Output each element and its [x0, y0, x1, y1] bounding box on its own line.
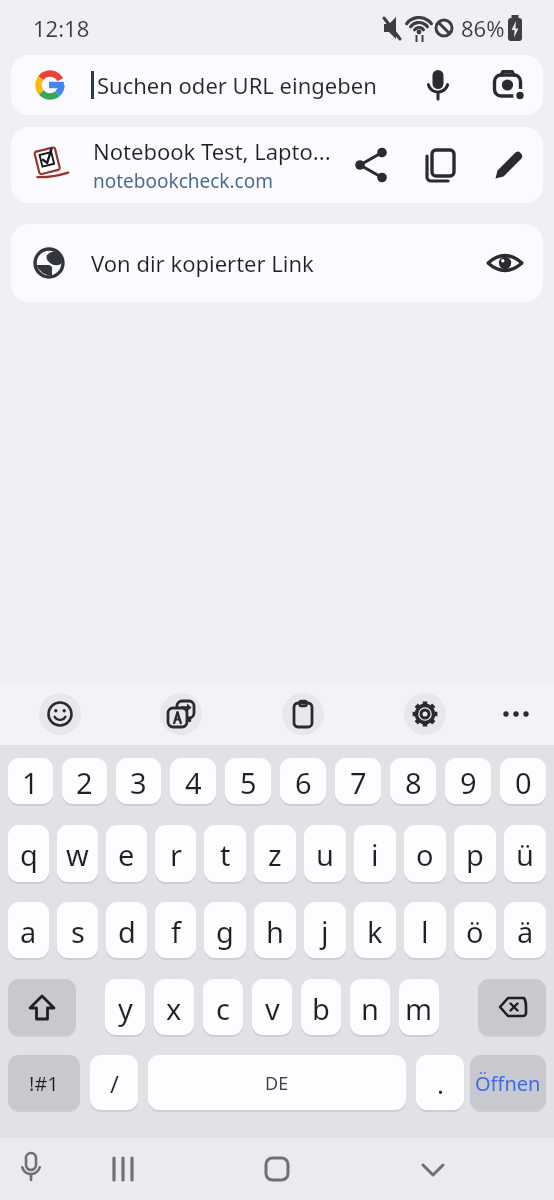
button[interactable]: . — [416, 1055, 464, 1112]
button[interactable]: v — [252, 979, 292, 1037]
button[interactable]: m — [399, 979, 439, 1037]
button[interactable]: !#1 — [8, 1055, 80, 1112]
button[interactable] — [110, 1155, 138, 1183]
staticText: h — [266, 912, 284, 951]
button[interactable]: b — [301, 979, 341, 1037]
staticText: d — [118, 912, 136, 951]
button[interactable] — [423, 148, 457, 182]
button[interactable] — [420, 1156, 446, 1182]
staticText: / — [110, 1067, 119, 1100]
staticText: 1 — [22, 763, 39, 802]
button[interactable]: a — [8, 902, 49, 960]
button[interactable] — [502, 699, 532, 729]
button[interactable]: 2 — [62, 758, 107, 806]
staticText: 9 — [460, 763, 477, 802]
button[interactable]: Öffnen — [470, 1055, 546, 1112]
button[interactable]: h — [254, 902, 296, 960]
button[interactable] — [8, 979, 76, 1037]
staticText: m — [405, 989, 433, 1028]
button[interactable]: t — [204, 825, 246, 884]
button[interactable]: ü — [504, 825, 546, 884]
staticText: Öffnen — [475, 1070, 541, 1097]
button[interactable]: 3 — [116, 758, 161, 806]
staticText: o — [416, 835, 434, 874]
staticText: g — [216, 912, 234, 951]
button[interactable]: n — [350, 979, 390, 1037]
staticText: k — [367, 912, 383, 951]
button[interactable]: i — [354, 825, 396, 884]
button[interactable]: d — [106, 902, 147, 960]
button[interactable]: w — [57, 825, 98, 884]
button[interactable]: u — [304, 825, 346, 884]
staticText: j — [321, 912, 329, 951]
button[interactable]: 7 — [335, 758, 381, 806]
button[interactable]: Notebook Test, Lapto... — [11, 127, 543, 203]
staticText: 86% — [461, 13, 505, 43]
staticText: Von dir kopierter Link — [91, 248, 314, 278]
button[interactable]: 6 — [280, 758, 326, 806]
button[interactable] — [493, 149, 525, 181]
button[interactable]: j — [304, 902, 346, 960]
staticText: 5 — [240, 763, 257, 802]
button[interactable] — [18, 1151, 44, 1187]
button[interactable]: 9 — [445, 758, 491, 806]
button[interactable] — [264, 1156, 290, 1182]
staticText: e — [118, 835, 135, 874]
button[interactable] — [487, 245, 523, 281]
staticText: b — [312, 989, 330, 1028]
staticText: t — [220, 835, 231, 874]
button[interactable]: 8 — [390, 758, 436, 806]
button[interactable]: s — [57, 902, 98, 960]
button[interactable]: ä — [504, 902, 546, 960]
button[interactable] — [404, 693, 446, 735]
button[interactable]: Suchen oder URL eingeben — [11, 55, 543, 115]
button[interactable]: c — [203, 979, 243, 1037]
staticText: 12:18 — [33, 13, 90, 43]
staticText: Suchen oder URL eingeben — [97, 70, 377, 100]
button[interactable] — [160, 693, 202, 735]
button[interactable] — [423, 70, 453, 100]
button[interactable]: x — [154, 979, 194, 1037]
staticText: ü — [516, 835, 534, 874]
button[interactable]: DE — [148, 1055, 406, 1112]
button[interactable] — [39, 693, 81, 735]
staticText: DE — [265, 1071, 289, 1096]
button[interactable]: Von dir kopierter Link — [11, 224, 543, 302]
button[interactable]: z — [254, 825, 296, 884]
staticText: p — [466, 835, 484, 874]
staticText: ö — [466, 912, 484, 951]
staticText: x — [166, 989, 182, 1028]
button[interactable]: 4 — [170, 758, 216, 806]
button[interactable]: r — [155, 825, 196, 884]
button[interactable]: g — [204, 902, 246, 960]
button[interactable] — [491, 68, 525, 102]
staticText: 3 — [130, 763, 147, 802]
button[interactable]: q — [8, 825, 49, 884]
staticText: 0 — [515, 763, 532, 802]
button[interactable]: / — [90, 1055, 138, 1112]
staticText: c — [216, 989, 230, 1028]
button[interactable]: 5 — [225, 758, 271, 806]
staticText: r — [170, 835, 182, 874]
button[interactable]: 0 — [500, 758, 546, 806]
button[interactable] — [355, 149, 387, 181]
staticText: n — [361, 989, 379, 1028]
button[interactable]: ö — [454, 902, 496, 960]
button[interactable]: e — [106, 825, 147, 884]
button[interactable]: 1 — [8, 758, 53, 806]
button[interactable]: y — [105, 979, 145, 1037]
button[interactable] — [282, 693, 324, 735]
staticText: q — [20, 835, 38, 874]
staticText: a — [20, 912, 37, 951]
button[interactable]: k — [354, 902, 396, 960]
staticText: 7 — [350, 763, 367, 802]
button[interactable]: p — [454, 825, 496, 884]
button[interactable]: o — [404, 825, 446, 884]
button[interactable]: l — [404, 902, 446, 960]
staticText: l — [421, 912, 429, 951]
staticText: !#1 — [29, 1070, 59, 1097]
staticText: f — [171, 912, 181, 951]
button[interactable] — [478, 979, 546, 1037]
staticText: 8 — [405, 763, 422, 802]
button[interactable]: f — [155, 902, 196, 960]
